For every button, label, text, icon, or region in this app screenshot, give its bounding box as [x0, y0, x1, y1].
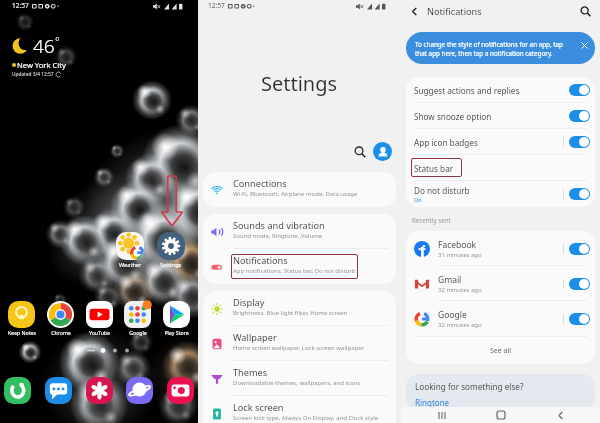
button[interactable] [569, 84, 590, 96]
button[interactable]: Lock screen [203, 396, 396, 423]
staticText: On [414, 196, 422, 204]
staticText: Status bar [414, 163, 454, 174]
staticText: Screen lock type, Always On Display, and… [233, 414, 379, 422]
staticText: Wallpaper [233, 331, 277, 344]
staticText: Google [129, 329, 147, 336]
staticText: App notifications, Status bar, Do not di… [233, 267, 356, 275]
button[interactable]: YouTube [81, 301, 118, 336]
staticText: Gmail [438, 274, 462, 286]
button[interactable]: Sounds and vibration [203, 214, 396, 249]
button[interactable]: Recents [421, 407, 461, 423]
button[interactable]: Back [407, 4, 422, 19]
staticText: 32 minutes ago [438, 321, 482, 329]
staticText: See all [490, 346, 512, 356]
staticText: Sound mode, Ringtone, Volume [233, 232, 323, 240]
button[interactable] [569, 110, 590, 122]
button[interactable]: Show snooze option [406, 103, 595, 129]
button[interactable]: Gallery [86, 377, 113, 404]
button[interactable]: Back [540, 407, 580, 423]
staticText: Lock screen [233, 401, 284, 414]
button[interactable]: Suggest actions and replies [406, 77, 595, 103]
staticText: 12:57 [12, 1, 29, 10]
button[interactable]: Play Store [158, 301, 195, 336]
button[interactable]: Camera [167, 377, 194, 404]
staticText: Home screen wallpaper, Lock screen wallp… [233, 344, 365, 352]
staticText: Themes [233, 366, 268, 379]
staticText: 46 [33, 33, 55, 59]
staticText: Connections [233, 177, 287, 190]
staticText: Facebook [438, 239, 477, 251]
button[interactable]: Chrome [42, 301, 79, 336]
staticText: New York City [17, 60, 66, 70]
button[interactable] [569, 278, 590, 290]
staticText: Keep Notes [8, 329, 36, 336]
staticText: Settings [160, 261, 182, 269]
button[interactable]: Google [119, 301, 156, 336]
button[interactable]: Facebook [406, 231, 595, 266]
button[interactable] [569, 188, 590, 200]
staticText: Updated 3/4 12:57 [12, 71, 54, 78]
staticText: Notifications [427, 5, 482, 18]
button[interactable]: See all [406, 337, 595, 364]
staticText: Google [438, 309, 467, 321]
button[interactable]: Gmail [406, 266, 595, 301]
staticText: Chrome [51, 329, 71, 336]
staticText: Wi-Fi, Bluetooth, Airplane mode, Data us… [233, 190, 358, 198]
button[interactable]: App icon badges [406, 129, 595, 155]
staticText: To change the style of notifications for… [415, 40, 576, 58]
staticText: Show snooze option [414, 111, 492, 122]
button[interactable]: Dismiss [579, 40, 589, 50]
button[interactable]: Settings [157, 232, 185, 269]
staticText: Display [233, 296, 265, 309]
button[interactable]: Keep Notes [3, 301, 40, 336]
button[interactable]: Do not disturb [406, 181, 595, 207]
staticText: Play Store [164, 329, 189, 336]
button[interactable]: Account [373, 142, 392, 161]
staticText: Suggest actions and replies [414, 85, 520, 96]
button[interactable]: Phone [4, 377, 31, 404]
staticText: Weather [119, 261, 142, 269]
staticText: Downloadable themes, wallpapers, and ico… [233, 379, 361, 387]
staticText: YouTube [89, 329, 110, 336]
button[interactable]: Themes [203, 361, 396, 396]
button[interactable]: Home [481, 407, 521, 423]
button[interactable]: Display [203, 291, 396, 326]
staticText: Recently sent [412, 216, 451, 224]
button[interactable]: Weather [116, 232, 144, 269]
staticText: Settings [261, 70, 338, 97]
staticText: Ringtone [415, 397, 450, 408]
staticText: App icon badges [414, 137, 478, 148]
button[interactable]: Google [406, 301, 595, 336]
staticText: Notifications [233, 254, 288, 267]
button[interactable] [569, 313, 590, 325]
staticText: Looking for something else? [415, 381, 524, 392]
button[interactable]: Notifications [203, 249, 396, 284]
staticText: 32 minutes ago [438, 286, 482, 294]
button[interactable] [569, 136, 590, 148]
staticText: ° [55, 33, 60, 48]
staticText: 31 minutes ago [438, 251, 482, 259]
staticText: 12:57 [208, 1, 225, 10]
button[interactable]: Internet [126, 377, 153, 404]
staticText: Brightness, Blue light filter, Home scre… [233, 309, 348, 317]
staticText: Sounds and vibration [233, 219, 325, 232]
button[interactable]: To change the style of notifications for… [406, 32, 595, 64]
button[interactable]: Status bar [406, 155, 595, 181]
button[interactable]: Wallpaper [203, 326, 396, 361]
button[interactable]: Messages [45, 377, 72, 404]
button[interactable]: Search [351, 143, 369, 161]
button[interactable]: Search [578, 4, 593, 19]
button[interactable]: Connections [203, 172, 396, 207]
staticText: Do not disturb [414, 185, 470, 196]
button[interactable] [569, 243, 590, 255]
